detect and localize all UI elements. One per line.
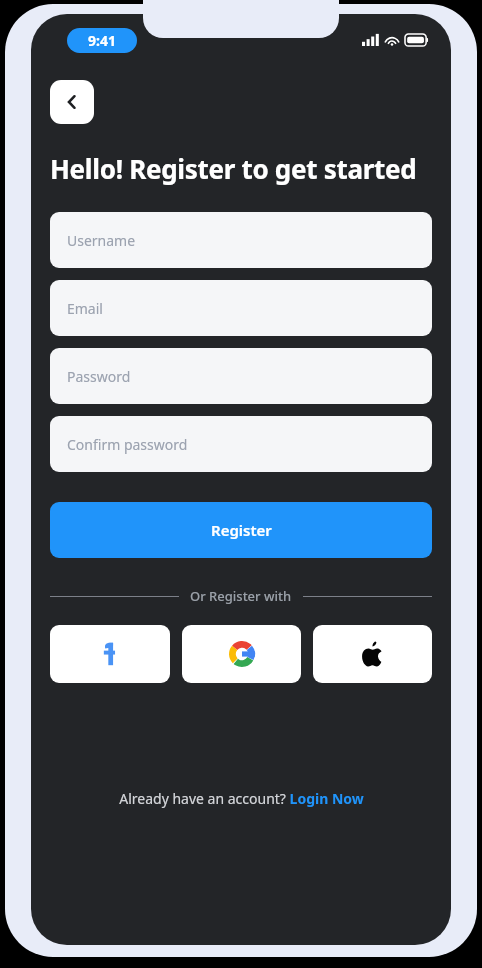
button[interactable]: Register xyxy=(50,502,432,558)
staticText: Register xyxy=(211,520,272,540)
staticText: Password xyxy=(67,367,131,386)
button[interactable]: Already have an account? Login Now xyxy=(119,789,364,808)
button[interactable]: Confirm password xyxy=(50,416,432,472)
button[interactable]: Password xyxy=(50,348,432,404)
button[interactable]: Email xyxy=(50,280,432,336)
button[interactable]: Back xyxy=(50,80,94,124)
button[interactable]: Sign up with Facebook xyxy=(50,625,170,683)
staticText: Email xyxy=(67,299,103,318)
button[interactable]: Sign up with Google xyxy=(182,625,301,683)
staticText: 9:41 xyxy=(88,31,116,50)
button[interactable]: Username xyxy=(50,212,432,268)
staticText: Username xyxy=(67,231,136,250)
staticText: Or Register with xyxy=(190,587,292,605)
staticText: Hello! Register to get started xyxy=(50,151,417,186)
staticText: Confirm password xyxy=(67,435,188,454)
staticText: Already have an account? Login Now xyxy=(119,789,364,808)
button[interactable]: Sign up with Apple xyxy=(313,625,432,683)
